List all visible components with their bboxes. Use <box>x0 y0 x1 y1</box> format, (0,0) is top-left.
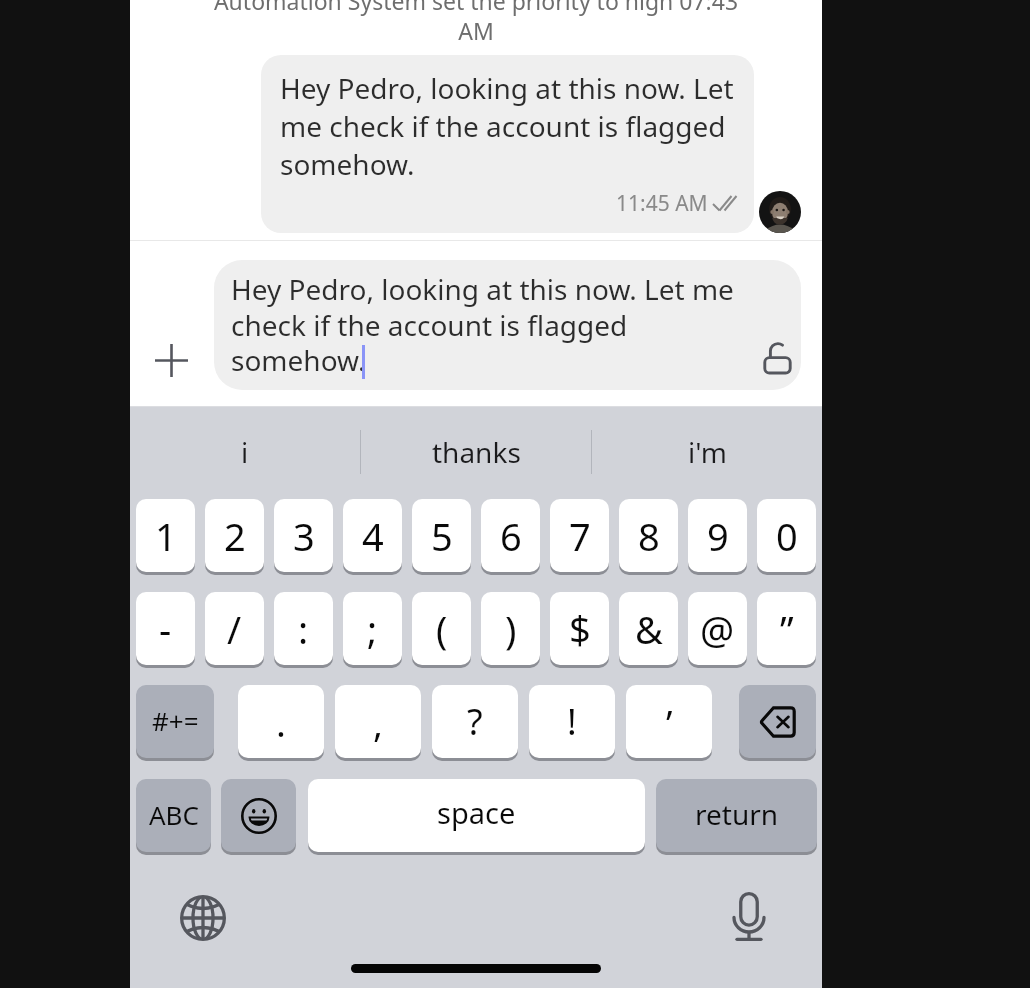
button[interactable]: #+= <box>136 685 214 758</box>
button[interactable]: 2 <box>205 499 264 572</box>
staticText: Hey Pedro, looking at this now. Let me c… <box>231 270 734 379</box>
staticText: Automation System set the priority to hi… <box>209 0 743 47</box>
button[interactable]: & <box>619 592 678 665</box>
staticText: 1 <box>155 510 177 562</box>
staticText: 2 <box>224 510 246 562</box>
button[interactable]: thanks <box>361 407 591 497</box>
staticText: 0 <box>776 510 798 562</box>
button[interactable]: @ <box>688 592 747 665</box>
button[interactable]: 7 <box>550 499 609 572</box>
button[interactable]: ! <box>529 685 615 758</box>
staticText: : <box>298 603 309 655</box>
staticText: 9 <box>707 510 729 562</box>
button[interactable]: Dictate <box>722 890 775 943</box>
staticText: i <box>241 433 249 471</box>
button[interactable]: : <box>274 592 333 665</box>
button[interactable]: 0 <box>757 499 816 572</box>
staticText: ’ <box>666 697 673 747</box>
staticText: / <box>227 603 242 655</box>
button[interactable]: Add attachment <box>145 334 198 387</box>
staticText: Hey Pedro, looking at this now. Let me c… <box>280 69 734 183</box>
button[interactable]: ABC <box>136 779 211 852</box>
staticText: #+= <box>152 703 199 738</box>
staticText: 4 <box>362 510 384 562</box>
button[interactable]: 5 <box>412 499 471 572</box>
button[interactable]: Change keyboard <box>177 892 229 944</box>
staticText: & <box>635 603 663 655</box>
button[interactable]: ? <box>432 685 518 758</box>
button[interactable]: 8 <box>619 499 678 572</box>
button[interactable]: Emoji keyboard <box>221 779 296 852</box>
staticText: thanks <box>432 433 521 471</box>
button[interactable]: Hey Pedro, looking at this now. Let me c… <box>261 55 754 233</box>
button[interactable]: ) <box>481 592 540 665</box>
staticText: 11:45 AM <box>616 189 708 218</box>
button[interactable]: Backspace <box>739 685 816 758</box>
button[interactable]: - <box>136 592 195 665</box>
button[interactable]: i'm <box>592 407 822 497</box>
staticText: . <box>276 697 286 747</box>
button[interactable]: / <box>205 592 264 665</box>
staticText: @ <box>700 603 735 655</box>
staticText: ! <box>567 697 577 746</box>
button[interactable]: 4 <box>343 499 402 572</box>
button[interactable]: ’ <box>626 685 712 758</box>
button[interactable]: i <box>130 407 360 497</box>
staticText: ABC <box>149 797 199 832</box>
button[interactable]: . <box>238 685 324 758</box>
staticText: 5 <box>431 510 453 562</box>
button[interactable]: ; <box>343 592 402 665</box>
button[interactable]: $ <box>550 592 609 665</box>
staticText: 3 <box>293 510 315 562</box>
button[interactable]: , <box>335 685 421 758</box>
staticText: $ <box>569 603 591 655</box>
staticText: ( <box>436 603 448 655</box>
button[interactable]: return <box>656 779 817 852</box>
staticText: i'm <box>688 433 727 471</box>
staticText: space <box>437 793 516 832</box>
button[interactable]: 1 <box>136 499 195 572</box>
staticText: ? <box>467 697 483 746</box>
staticText: , <box>373 697 383 747</box>
button[interactable]: 9 <box>688 499 747 572</box>
button[interactable]: 6 <box>481 499 540 572</box>
staticText: - <box>159 603 172 655</box>
staticText: ” <box>780 603 794 655</box>
staticText: 6 <box>500 510 522 562</box>
staticText: 8 <box>638 510 660 562</box>
staticText: ; <box>367 603 378 655</box>
button[interactable]: End-to-end encryption <box>751 331 801 385</box>
button[interactable]: ” <box>757 592 816 665</box>
button[interactable]: Sender avatar <box>759 191 801 233</box>
button[interactable]: Hey Pedro, looking at this now. Let me c… <box>214 260 801 390</box>
button[interactable]: 3 <box>274 499 333 572</box>
staticText: ) <box>505 603 517 655</box>
staticText: return <box>695 795 779 833</box>
button[interactable]: space <box>308 779 645 852</box>
staticText: 7 <box>569 510 591 562</box>
button[interactable]: ( <box>412 592 471 665</box>
